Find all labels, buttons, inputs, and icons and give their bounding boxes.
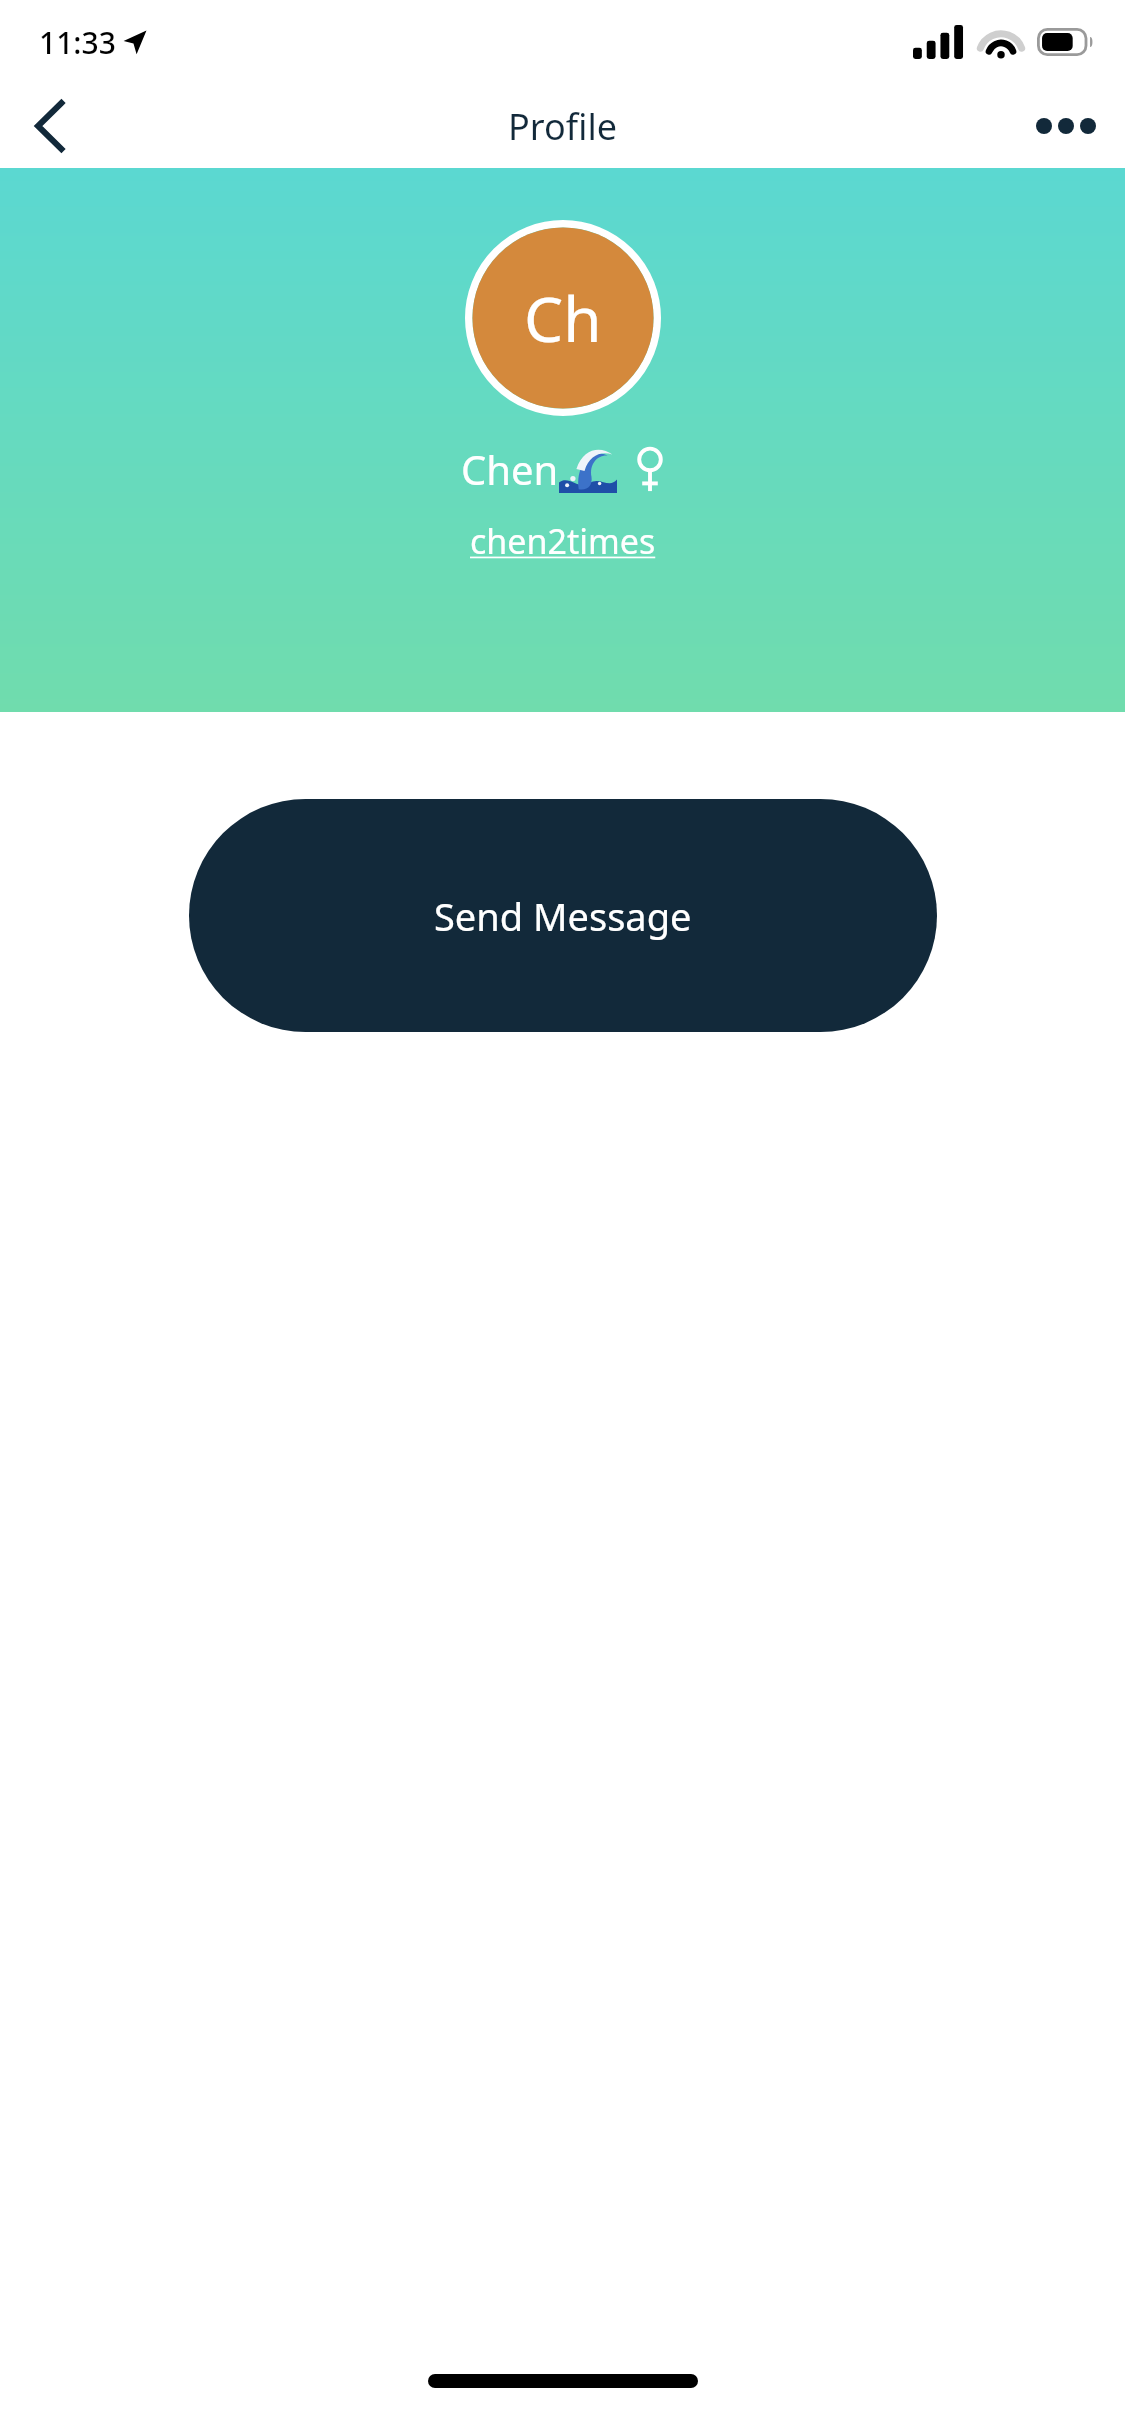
button[interactable]: More options [1027,87,1105,165]
button[interactable]: Send Message [189,799,937,1032]
button[interactable]: Profile picture [465,220,661,416]
staticText: chen2times [470,518,656,564]
staticText: Chen [461,442,559,496]
staticText: 11:33 [39,22,116,63]
staticText: Ch [524,276,602,360]
staticText: Send Message [434,890,692,942]
button[interactable]: Back [14,90,86,162]
staticText: Profile [508,102,617,151]
button[interactable]: chen2times [464,516,662,566]
